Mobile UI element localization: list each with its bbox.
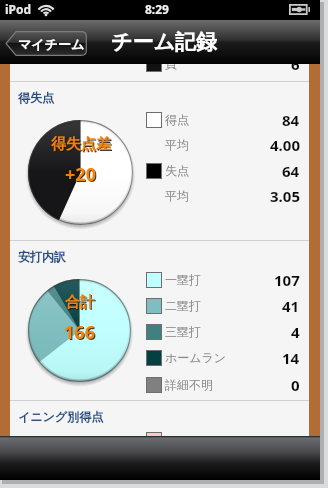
staticText: 負 bbox=[165, 64, 177, 71]
staticText: 64 bbox=[282, 161, 300, 177]
other: Battery charging bbox=[289, 4, 310, 15]
staticText: 平均 bbox=[165, 188, 189, 203]
button[interactable]: 合計 bbox=[28, 279, 131, 382]
button[interactable]: ホームラン bbox=[146, 350, 300, 366]
button[interactable]: 平均 bbox=[146, 137, 300, 153]
other: Wi-Fi signal bbox=[38, 5, 54, 17]
staticText: 8:29 bbox=[145, 1, 169, 17]
staticText: 0 bbox=[291, 375, 300, 391]
button[interactable]: 三塁打 bbox=[146, 324, 300, 340]
staticText: 平均 bbox=[165, 137, 189, 152]
staticText: 84 bbox=[282, 110, 300, 126]
staticText: 合計 bbox=[65, 293, 95, 312]
button[interactable]: 負 bbox=[146, 64, 300, 72]
staticText: 合計 bbox=[66, 294, 96, 313]
staticText: 166 bbox=[64, 320, 95, 345]
staticText: ホームラン bbox=[165, 350, 227, 365]
staticText: チーム記録 bbox=[111, 29, 217, 55]
staticText: 失点 bbox=[165, 163, 189, 178]
staticText: 二塁打 bbox=[165, 298, 201, 313]
staticText: 107 bbox=[274, 270, 300, 286]
staticText: 3.05 bbox=[270, 186, 300, 202]
staticText: 安打内訳 bbox=[18, 249, 66, 264]
staticText: 14 bbox=[282, 348, 300, 364]
staticText: 得失点差 bbox=[51, 135, 111, 154]
button[interactable]: 平均 bbox=[146, 188, 300, 204]
staticText: 6 bbox=[291, 64, 300, 70]
staticText: 三塁打 bbox=[165, 324, 201, 339]
staticText: 41 bbox=[282, 296, 300, 312]
button[interactable]: 一塁打 bbox=[146, 272, 300, 288]
staticText: 4.00 bbox=[270, 135, 300, 151]
button[interactable]: 二塁打 bbox=[146, 298, 300, 314]
staticText: マイチーム bbox=[18, 36, 85, 52]
button[interactable]: 得失点差 bbox=[28, 120, 133, 225]
staticText: 一塁打 bbox=[165, 272, 201, 287]
button[interactable]: Back to My Team bbox=[5, 31, 87, 56]
staticText: +20 bbox=[66, 163, 97, 188]
staticText: 詳細不明 bbox=[165, 377, 213, 392]
staticText: 4 bbox=[291, 322, 300, 338]
button[interactable]: 詳細不明 bbox=[146, 377, 300, 393]
button[interactable]: 失点 bbox=[146, 163, 300, 179]
staticText: iPod bbox=[5, 1, 32, 17]
staticText: +20 bbox=[65, 162, 96, 187]
staticText: 得失点 bbox=[18, 90, 54, 105]
staticText: イニング別得点 bbox=[18, 409, 104, 424]
button[interactable]: Toolbar bbox=[0, 436, 320, 480]
staticText: 得点 bbox=[165, 112, 189, 127]
staticText: 得失点差 bbox=[52, 136, 112, 155]
staticText: 166 bbox=[65, 321, 96, 346]
button[interactable]: 得点 bbox=[146, 112, 300, 128]
